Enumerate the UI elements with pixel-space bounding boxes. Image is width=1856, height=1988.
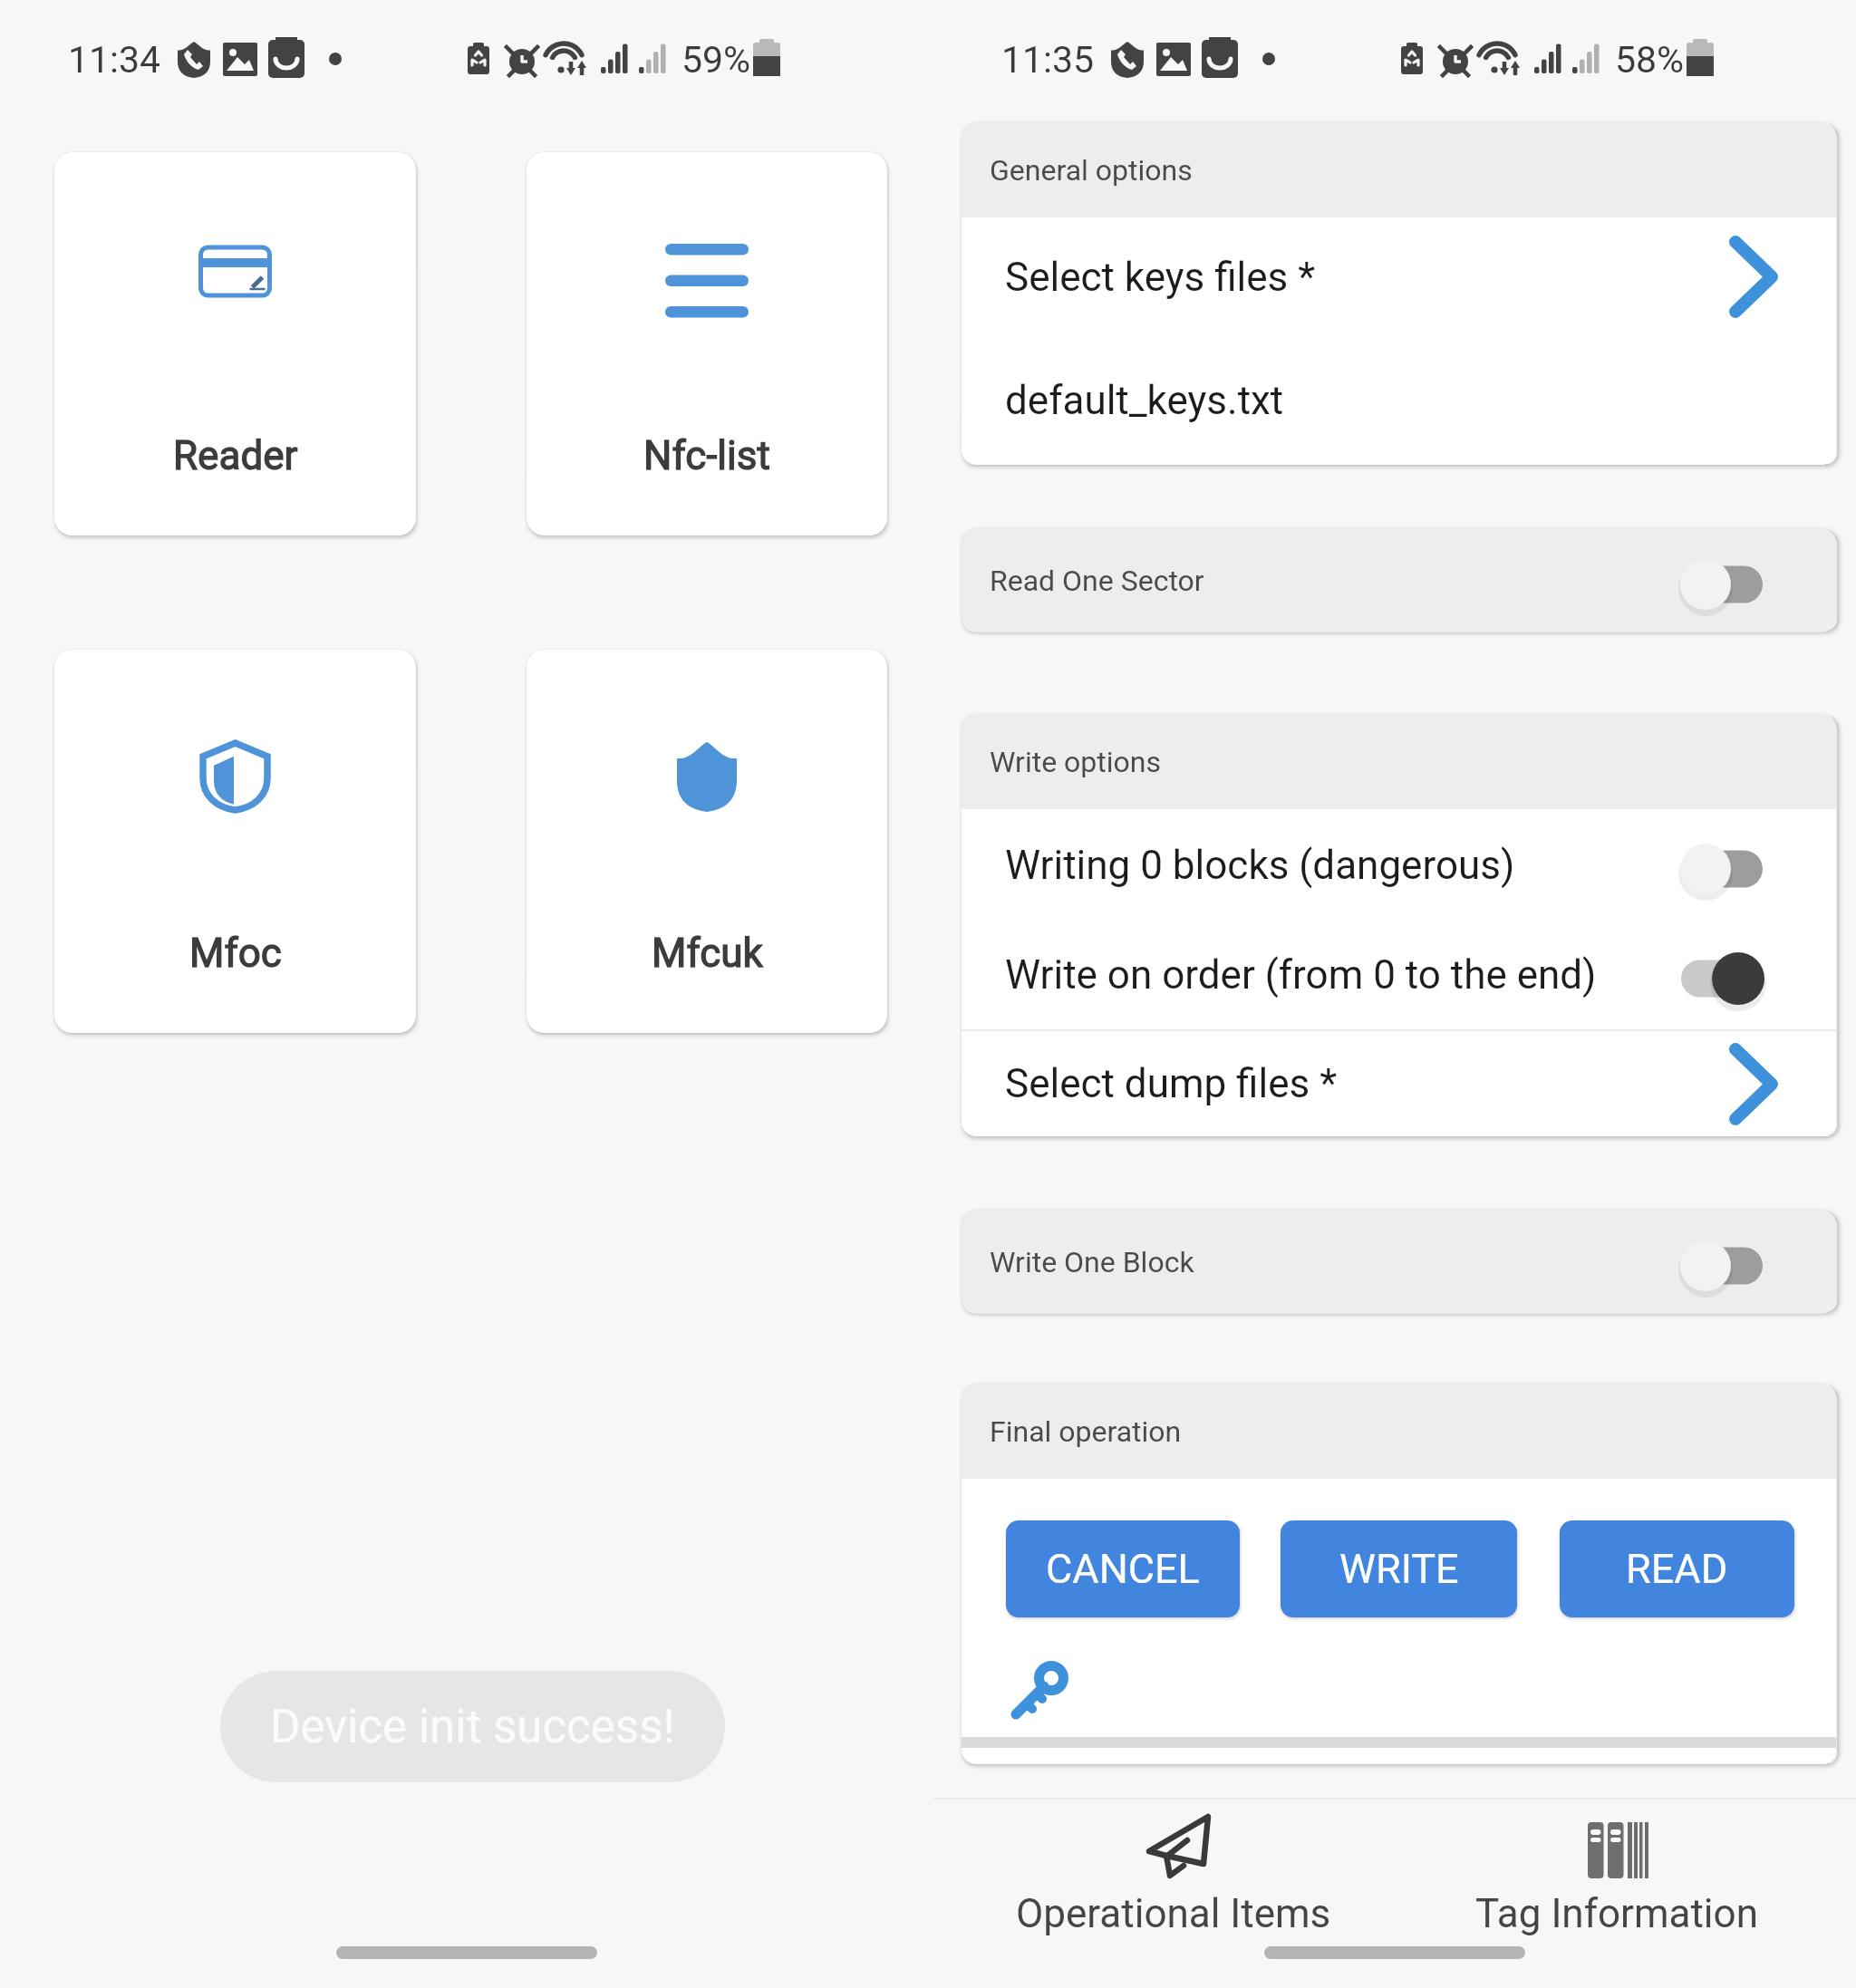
button[interactable]: Reader — [54, 152, 416, 536]
staticText: 58% — [1615, 38, 1685, 82]
staticText: Writing 0 blocks (dangerous) — [1005, 842, 1678, 889]
staticText: Read One Sector — [990, 564, 1678, 598]
staticText: 11:34 — [68, 38, 161, 82]
button[interactable]: Writing 0 blocks (dangerous) — [962, 809, 1836, 921]
staticText: Write One Block — [990, 1245, 1678, 1279]
staticText: Select keys files * — [1005, 254, 1729, 301]
staticText: Mfoc — [189, 930, 282, 977]
staticText: Write on order (from 0 to the end) — [1005, 951, 1678, 999]
staticText: Device init success! — [270, 1700, 675, 1754]
staticText: Mfcuk — [652, 930, 763, 977]
staticText: 59% — [681, 38, 751, 82]
staticText: Nfc-list — [643, 432, 770, 479]
staticText: Select dump files * — [1005, 1060, 1729, 1107]
staticText: Final operation — [990, 1414, 1182, 1449]
staticText: READ — [1626, 1545, 1728, 1593]
button[interactable]: Nfc-list — [527, 152, 887, 536]
button[interactable]: Mfoc — [54, 650, 416, 1033]
staticText: Operational Items — [1016, 1890, 1331, 1937]
button[interactable]: WRITE — [1281, 1520, 1517, 1617]
staticText: default_keys.txt — [1005, 377, 1284, 424]
button[interactable]: Keys — [1010, 1665, 1068, 1723]
button[interactable]: Select dump files * — [962, 1031, 1836, 1136]
button[interactable]: Select keys files * — [962, 217, 1836, 336]
button[interactable]: CANCEL — [1006, 1520, 1240, 1617]
button[interactable]: Mfcuk — [527, 650, 887, 1033]
staticText: Reader — [173, 432, 298, 479]
staticText: Tag Information — [1475, 1890, 1758, 1937]
button[interactable]: Write One Block — [962, 1210, 1836, 1314]
button[interactable]: Tag Information — [1395, 1800, 1838, 1988]
staticText: 11:35 — [1001, 38, 1095, 82]
button[interactable]: Write on order (from 0 to the end) — [962, 921, 1836, 1029]
button[interactable]: Read One Sector — [962, 528, 1836, 632]
button[interactable]: Operational Items — [952, 1800, 1395, 1988]
staticText: Write options — [990, 745, 1161, 779]
staticText: CANCEL — [1046, 1545, 1200, 1593]
staticText: General options — [990, 153, 1193, 188]
staticText: WRITE — [1339, 1545, 1459, 1593]
button[interactable]: READ — [1560, 1520, 1794, 1617]
